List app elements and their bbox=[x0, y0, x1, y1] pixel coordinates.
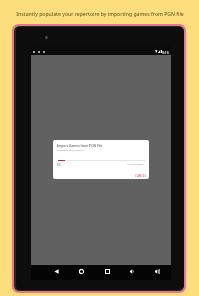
staticText: 9:16 bbox=[162, 50, 169, 55]
button[interactable]: CANCEL bbox=[134, 172, 147, 179]
staticText: Instantly populate your repertoire by im… bbox=[16, 11, 184, 18]
button[interactable]: Volume down bbox=[128, 267, 137, 276]
staticText: processing game records... bbox=[57, 149, 85, 152]
button[interactable]: Recent apps bbox=[103, 267, 112, 276]
button[interactable]: Back bbox=[52, 267, 61, 276]
staticText: 8% bbox=[57, 163, 61, 167]
staticText: CANCEL bbox=[135, 174, 147, 178]
button[interactable]: Home bbox=[77, 267, 86, 276]
staticText: 12 of 146 games bbox=[127, 163, 144, 166]
button[interactable]: Volume up bbox=[153, 267, 162, 276]
staticText: Import Games from PGN File bbox=[57, 143, 103, 147]
